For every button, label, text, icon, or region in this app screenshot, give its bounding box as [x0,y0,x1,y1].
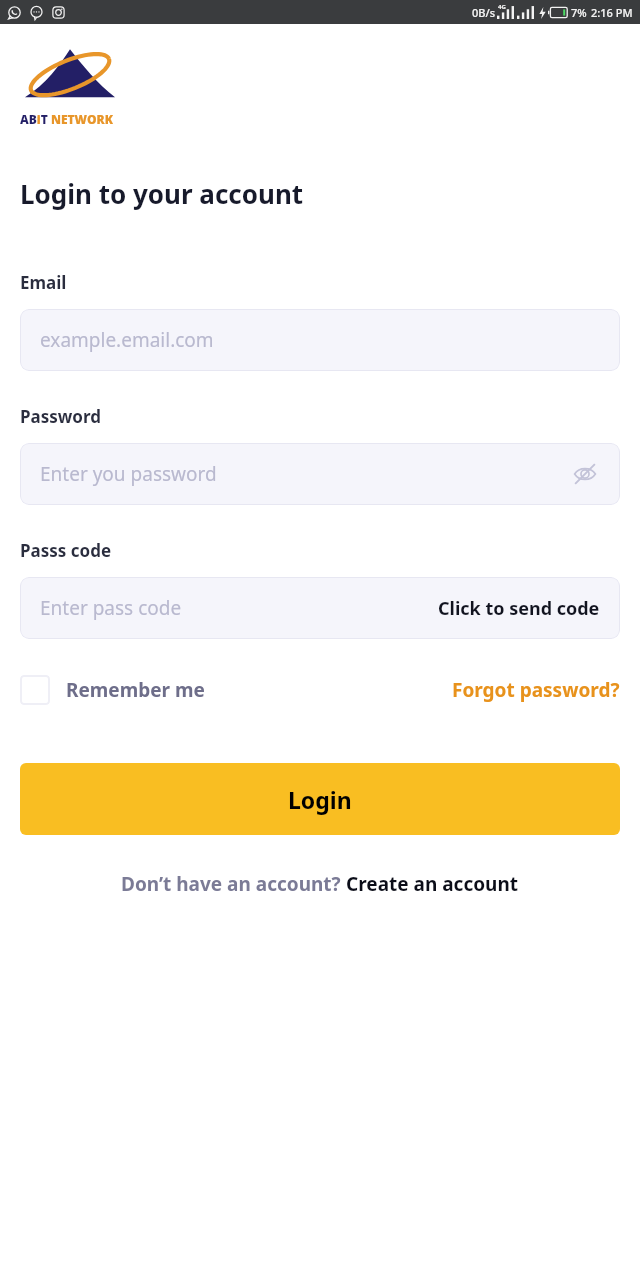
staticText: Password [20,405,101,428]
staticText: Remember me [66,677,205,703]
staticText: example.email.com [40,327,600,353]
staticText: Passs code [20,539,112,562]
staticText: Forgot password? [452,677,620,703]
button[interactable]: Remember me [20,675,205,705]
staticText: Create an account [346,871,519,897]
button[interactable]: Enter you password [20,443,620,505]
staticText: 0B/s [472,5,496,20]
staticText: Enter you password [40,461,570,487]
staticText: 2:16 PM [591,5,633,20]
button[interactable]: Enter pass code [20,577,620,639]
staticText: Email [20,271,67,294]
staticText: ABiT NETWORK [20,111,113,127]
staticText: Click to send code [438,596,600,621]
staticText: 7% [571,5,587,20]
button[interactable]: Show password [570,459,600,489]
staticText: Enter pass code [40,595,438,621]
staticText: 4G [498,3,506,11]
button[interactable]: Don’t have an account? [121,871,519,897]
staticText: Don’t have an account? [121,871,346,897]
button[interactable]: example.email.com [20,309,620,371]
staticText: Login to your account [20,176,304,211]
button[interactable]: Click to send code [438,596,600,621]
button[interactable]: Login [20,763,620,835]
staticText: Login [288,784,352,815]
button[interactable]: Forgot password? [452,677,620,703]
